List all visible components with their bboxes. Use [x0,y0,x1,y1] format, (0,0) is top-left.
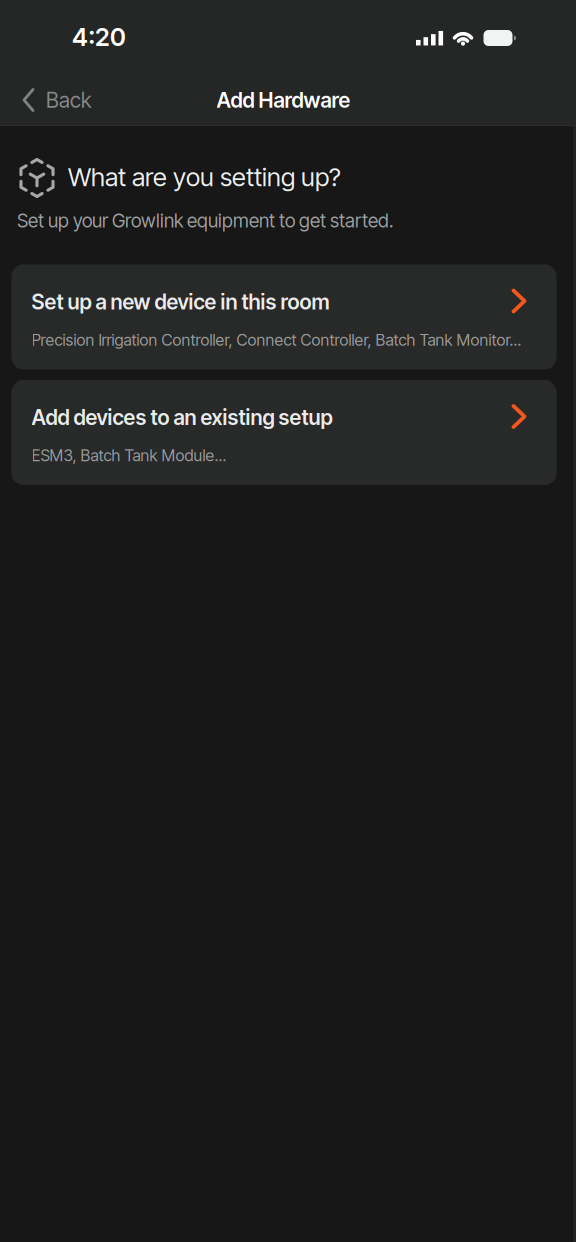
staticText: Precision Irrigation Controller, Connect… [31,330,521,349]
staticText: Add devices to an existing setup [31,405,332,430]
staticText: What are you setting up? [68,162,341,192]
staticText: 4:20 [72,22,126,52]
button[interactable]: Set up a new device in this room [11,264,556,369]
staticText: Add Hardware [216,88,350,112]
staticText: Back [46,88,91,112]
staticText: Set up your Growlink equipment to get st… [17,209,394,232]
button[interactable]: Add devices to an existing setup [11,380,556,485]
staticText: Set up a new device in this room [31,289,329,314]
button[interactable]: Back [0,78,101,122]
staticText: ESM3, Batch Tank Module... [31,446,226,465]
